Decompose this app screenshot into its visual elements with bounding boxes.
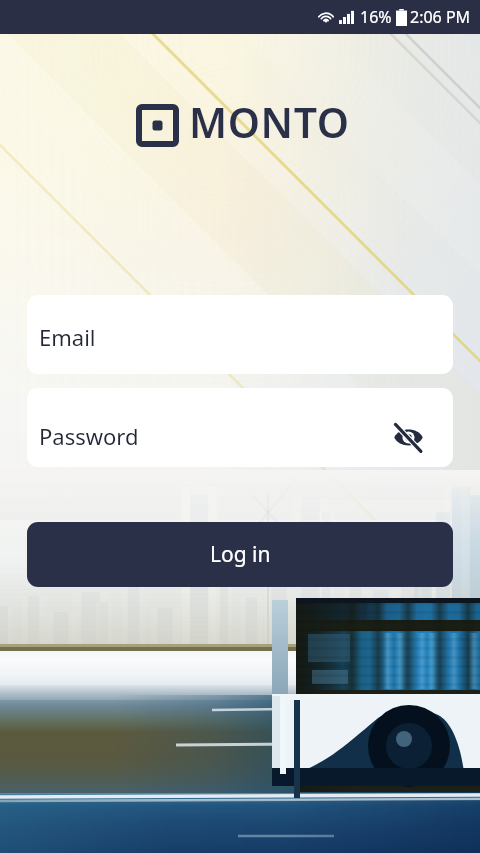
- staticText: Password: [39, 421, 139, 451]
- staticText: 2:06 PM: [410, 6, 471, 28]
- button[interactable]: Password: [27, 388, 453, 467]
- staticText: Log in: [210, 540, 271, 569]
- staticText: 16%: [360, 6, 392, 28]
- button[interactable]: Show password: [391, 420, 425, 454]
- button[interactable]: Email: [27, 295, 453, 374]
- staticText: MONTO: [189, 94, 350, 150]
- staticText: Email: [39, 322, 96, 352]
- button[interactable]: Log in: [27, 522, 453, 587]
